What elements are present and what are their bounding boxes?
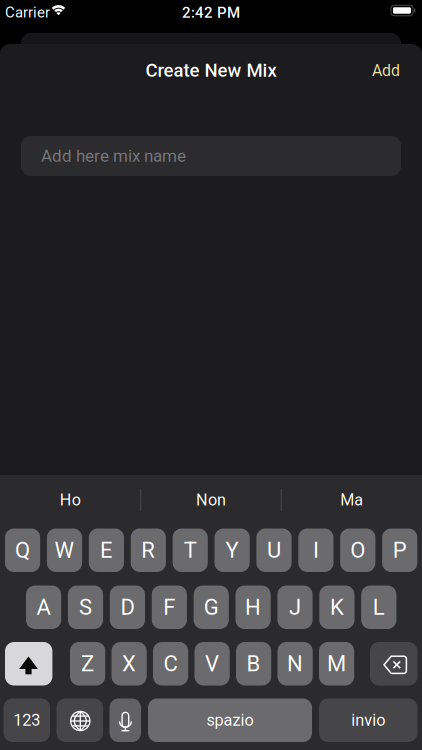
button[interactable]: spazio xyxy=(148,698,312,742)
button[interactable]: Z xyxy=(70,642,105,685)
staticText: 123 xyxy=(13,711,40,730)
staticText: X xyxy=(122,651,136,677)
staticText: spazio xyxy=(206,711,253,730)
staticText: H xyxy=(245,594,261,620)
button[interactable]: K xyxy=(319,585,354,629)
staticText: Add xyxy=(372,61,400,80)
staticText: G xyxy=(204,594,219,620)
button[interactable]: Q xyxy=(5,528,40,572)
button[interactable]: S xyxy=(68,585,103,629)
button[interactable]: Add xyxy=(372,61,400,80)
staticText: M xyxy=(327,651,346,677)
staticText: E xyxy=(100,537,113,563)
staticText: 2:42 PM xyxy=(182,4,240,21)
staticText: D xyxy=(120,594,134,620)
staticText: L xyxy=(373,594,385,620)
button[interactable]: X xyxy=(111,642,147,685)
button[interactable]: T xyxy=(173,528,208,572)
button[interactable]: E xyxy=(89,528,124,572)
staticText: invio xyxy=(351,711,385,730)
staticText: T xyxy=(184,537,197,563)
button[interactable]: C xyxy=(153,642,188,685)
staticText: Ma xyxy=(340,490,363,509)
staticText: Non xyxy=(196,490,226,509)
button[interactable]: F xyxy=(152,585,187,629)
button[interactable]: Add here mix name xyxy=(21,136,401,176)
button[interactable]: L xyxy=(361,585,396,629)
button[interactable]: B xyxy=(236,642,271,685)
button[interactable] xyxy=(56,698,103,742)
button[interactable]: 123 xyxy=(3,698,50,742)
button[interactable]: W xyxy=(47,528,82,572)
staticText: Add here mix name xyxy=(41,146,186,166)
staticText: C xyxy=(164,651,178,677)
staticText: P xyxy=(393,537,407,563)
button[interactable] xyxy=(5,642,52,685)
button[interactable]: P xyxy=(382,528,417,572)
staticText: R xyxy=(141,537,155,563)
staticText: Carrier xyxy=(5,4,50,21)
button[interactable] xyxy=(109,698,141,742)
button[interactable]: U xyxy=(256,528,292,572)
staticText: J xyxy=(289,594,301,620)
button[interactable]: I xyxy=(298,528,333,572)
staticText: U xyxy=(267,537,281,563)
staticText: A xyxy=(37,594,51,620)
button[interactable]: J xyxy=(277,585,313,629)
staticText: I xyxy=(313,537,319,563)
button[interactable]: Ma xyxy=(283,477,421,522)
button[interactable] xyxy=(370,642,417,685)
button[interactable]: V xyxy=(194,642,230,685)
staticText: O xyxy=(350,537,365,563)
button[interactable]: Y xyxy=(214,528,250,572)
staticText: Z xyxy=(81,651,94,677)
button[interactable]: invio xyxy=(319,698,417,742)
button[interactable]: H xyxy=(235,585,271,629)
staticText: B xyxy=(247,651,261,677)
button[interactable]: G xyxy=(194,585,229,629)
staticText: Ho xyxy=(60,490,81,509)
staticText: Create New Mix xyxy=(145,60,276,81)
button[interactable]: Non xyxy=(142,477,280,522)
button[interactable]: M xyxy=(319,642,354,685)
staticText: Y xyxy=(226,537,239,563)
button[interactable]: A xyxy=(26,585,61,629)
staticText: W xyxy=(54,537,74,563)
button[interactable]: Ho xyxy=(1,477,139,522)
button[interactable]: D xyxy=(110,585,145,629)
staticText: N xyxy=(287,651,303,677)
staticText: V xyxy=(205,651,219,677)
button[interactable]: R xyxy=(131,528,166,572)
button[interactable]: N xyxy=(277,642,313,685)
staticText: F xyxy=(163,594,175,620)
staticText: S xyxy=(79,594,92,620)
staticText: Q xyxy=(15,537,30,563)
staticText: K xyxy=(330,594,344,620)
button[interactable]: O xyxy=(340,528,375,572)
